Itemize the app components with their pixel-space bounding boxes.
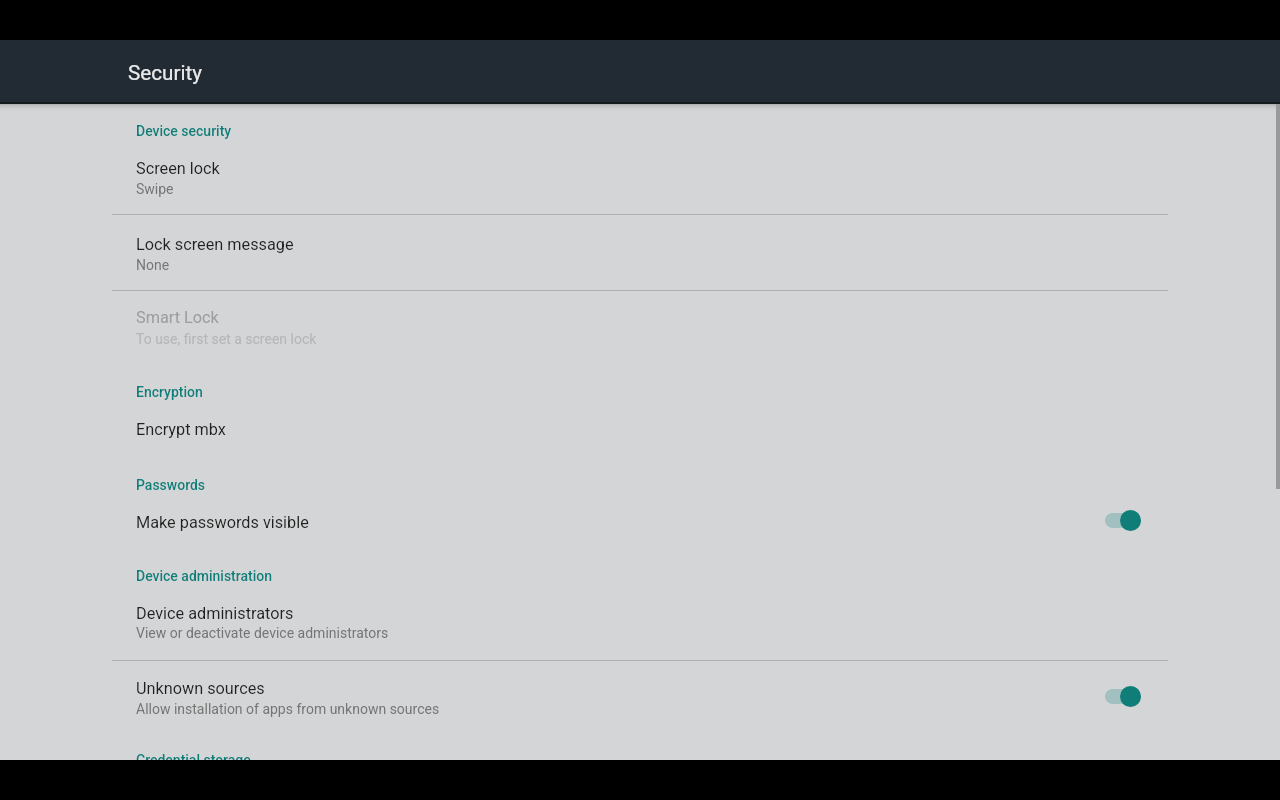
button[interactable] (0, 588, 1280, 660)
staticText: Encryption (136, 384, 203, 400)
staticText: Screen lock (136, 159, 220, 178)
staticText: Device security (136, 123, 232, 139)
staticText: To use, first set a screen lock (136, 331, 317, 347)
button[interactable] (0, 215, 1280, 290)
staticText: Device administration (136, 568, 272, 584)
staticText: Credential storage (136, 752, 251, 768)
button[interactable] (0, 291, 1280, 366)
staticText: Lock screen message (136, 235, 294, 254)
button[interactable] (0, 661, 1280, 733)
button[interactable] (0, 143, 1280, 214)
staticText: Allow installation of apps from unknown … (136, 701, 440, 717)
staticText: Device administrators (136, 604, 294, 623)
staticText: Encrypt mbx (136, 420, 226, 439)
staticText: Security (128, 61, 203, 85)
button[interactable]: Make passwords visible (1099, 496, 1147, 544)
button[interactable] (0, 493, 1280, 549)
staticText: View or deactivate device administrators (136, 625, 389, 641)
button[interactable]: Allow installation from unknown sources (1099, 672, 1147, 720)
staticText: Unknown sources (136, 679, 265, 698)
staticText: None (136, 257, 170, 273)
staticText: Smart Lock (136, 308, 219, 327)
staticText: Passwords (136, 477, 206, 493)
staticText: Swipe (136, 181, 174, 197)
button[interactable] (0, 400, 1280, 456)
staticText: Make passwords visible (136, 513, 309, 532)
